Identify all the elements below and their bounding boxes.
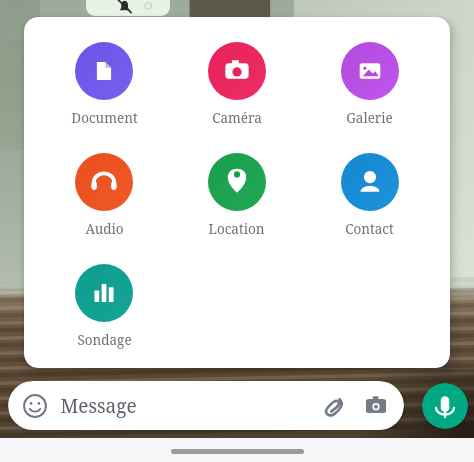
staticText: Document	[71, 109, 138, 127]
button[interactable]: Audio	[38, 151, 170, 240]
button[interactable]: Sondage	[38, 262, 170, 351]
staticText: Galerie	[346, 109, 393, 127]
button[interactable]: Camera	[362, 392, 390, 420]
staticText: Audio	[85, 220, 124, 238]
button[interactable]: Caméra	[170, 40, 303, 129]
staticText: Contact	[345, 220, 394, 238]
button[interactable]: Document	[38, 40, 170, 129]
button[interactable]: Galerie	[303, 40, 436, 129]
button[interactable]: Emoji	[8, 381, 404, 430]
staticText: Location	[208, 220, 265, 238]
staticText: Caméra	[212, 109, 262, 127]
button[interactable]: Record voice message	[422, 383, 468, 429]
button[interactable]: Emoji	[22, 393, 48, 419]
button[interactable]: Attach	[320, 392, 348, 420]
button[interactable]: Location	[170, 151, 303, 240]
staticText: Sondage	[77, 331, 132, 349]
staticText: Message	[60, 393, 137, 419]
button[interactable]: Contact	[303, 151, 436, 240]
